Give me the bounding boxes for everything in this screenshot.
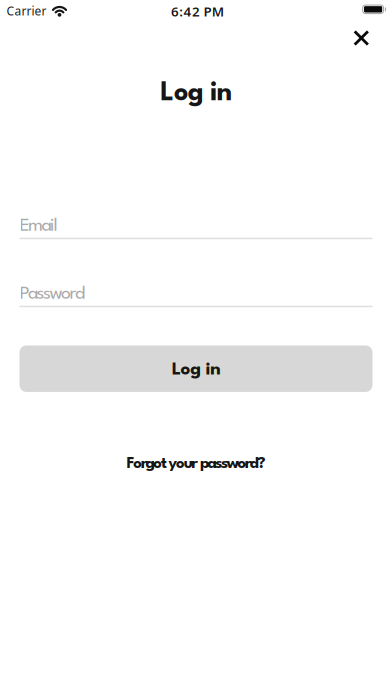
staticText: Email bbox=[19, 217, 57, 235]
staticText: 6:42 PM bbox=[171, 2, 224, 20]
staticText: Carrier bbox=[6, 3, 46, 19]
textField[interactable]: Email bbox=[19, 209, 372, 239]
staticText: Password bbox=[19, 285, 85, 303]
staticText: Log in bbox=[172, 361, 220, 379]
secureTextField[interactable]: Password bbox=[19, 277, 372, 307]
staticText: Log in bbox=[160, 81, 232, 106]
button[interactable]: Forgot your password? bbox=[126, 456, 265, 472]
staticText: Forgot your password? bbox=[126, 456, 265, 472]
button[interactable]: Close bbox=[339, 16, 383, 60]
button[interactable]: Log in bbox=[19, 345, 372, 392]
